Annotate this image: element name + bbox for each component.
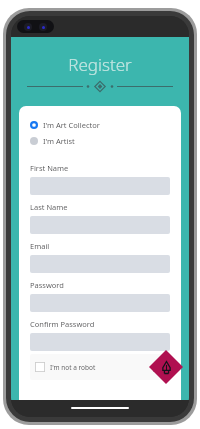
staticText: I'm Art Collector	[43, 120, 100, 130]
staticText: I'm Artist	[43, 136, 75, 146]
staticText: Last Name	[30, 202, 68, 212]
button[interactable]	[30, 333, 170, 351]
staticText: I'm not a robot	[50, 363, 96, 372]
button[interactable]: I'm not a robot	[30, 354, 170, 380]
staticText: Email	[30, 241, 50, 251]
staticText: Confirm Password	[30, 319, 95, 329]
staticText: Password	[30, 280, 64, 290]
button[interactable]: I'm Art Collector	[30, 118, 170, 131]
button[interactable]: Compose artwork	[149, 350, 183, 384]
staticText: Register	[11, 53, 189, 76]
button[interactable]: I'm Artist	[30, 134, 170, 147]
staticText: First Name	[30, 163, 69, 173]
